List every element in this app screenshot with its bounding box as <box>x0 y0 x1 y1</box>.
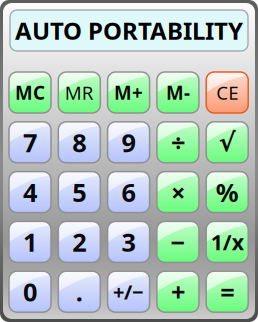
staticText: % <box>216 175 239 209</box>
button[interactable]: 1/x <box>206 221 248 262</box>
staticText: CE <box>216 80 238 105</box>
button[interactable]: √ <box>206 122 248 163</box>
staticText: 0 <box>23 275 37 308</box>
staticText: √ <box>219 128 236 157</box>
button[interactable]: 1 <box>9 221 51 262</box>
button[interactable]: × <box>157 172 199 213</box>
staticText: . <box>76 275 83 308</box>
staticText: M- <box>166 80 190 105</box>
staticText: AUTO PORTABILITY <box>15 15 243 46</box>
button[interactable]: MR <box>58 72 100 113</box>
staticText: 1 <box>23 225 37 259</box>
staticText: × <box>171 175 185 209</box>
staticText: = <box>220 275 234 308</box>
staticText: +/− <box>113 278 144 305</box>
staticText: 2 <box>72 225 86 259</box>
staticText: 8 <box>72 125 86 159</box>
button[interactable]: MC <box>9 72 51 113</box>
staticText: 4 <box>23 175 37 209</box>
button[interactable]: % <box>206 172 248 213</box>
button[interactable]: − <box>157 221 199 262</box>
button[interactable]: 9 <box>108 122 150 163</box>
staticText: 7 <box>23 125 37 159</box>
staticText: 9 <box>122 125 136 159</box>
staticText: MR <box>65 80 94 105</box>
staticText: MC <box>15 80 45 105</box>
button[interactable]: 3 <box>108 221 150 262</box>
staticText: 5 <box>72 175 86 209</box>
staticText: 3 <box>122 225 136 259</box>
button[interactable]: 5 <box>58 172 100 213</box>
staticText: 1/x <box>211 228 244 256</box>
button[interactable]: + <box>157 271 199 312</box>
button[interactable]: 2 <box>58 221 100 262</box>
button[interactable]: 8 <box>58 122 100 163</box>
staticText: − <box>170 225 185 259</box>
button[interactable]: M- <box>157 72 199 113</box>
button[interactable]: ÷ <box>157 122 199 163</box>
button[interactable]: CE <box>206 72 248 113</box>
button[interactable]: 0 <box>9 271 51 312</box>
button[interactable]: M+ <box>108 72 150 113</box>
button[interactable]: +/− <box>108 271 150 312</box>
button[interactable]: . <box>58 271 100 312</box>
button[interactable]: 6 <box>108 172 150 213</box>
staticText: 6 <box>122 175 136 209</box>
button[interactable]: = <box>206 271 248 312</box>
staticText: M+ <box>114 80 143 105</box>
staticText: ÷ <box>171 125 185 159</box>
button[interactable]: 4 <box>9 172 51 213</box>
staticText: + <box>171 275 185 308</box>
button[interactable]: 7 <box>9 122 51 163</box>
